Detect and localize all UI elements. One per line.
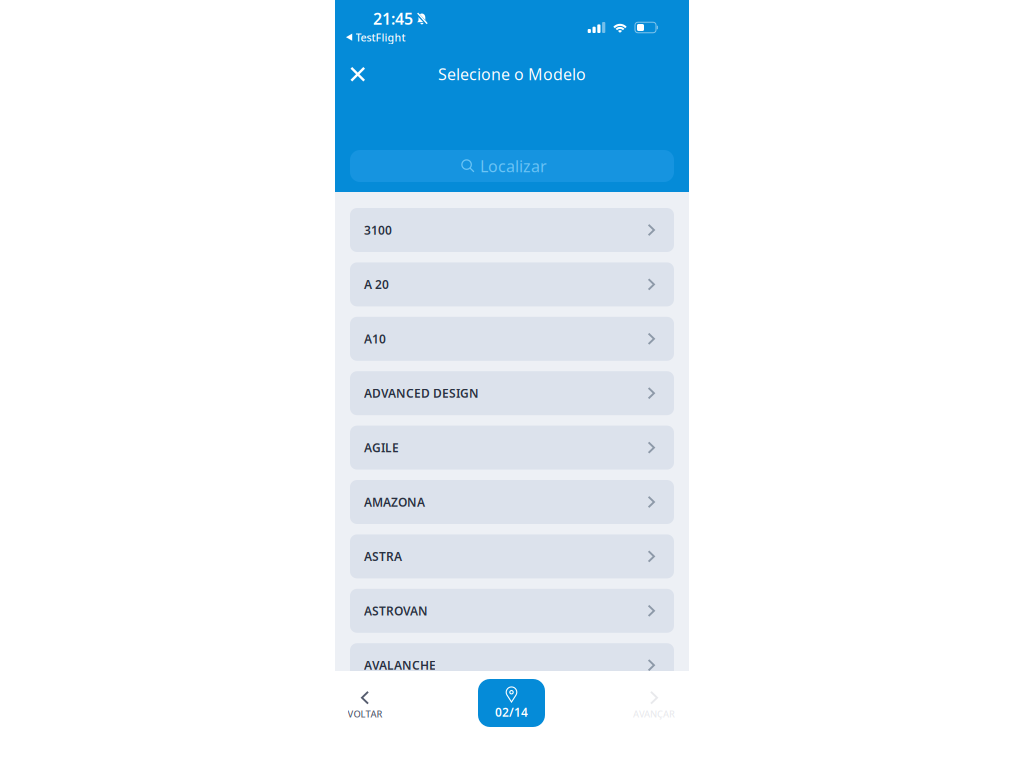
staticText: ASTROVAN [364,603,428,619]
button[interactable]: AVANÇAR [619,680,689,726]
button[interactable]: ASTRA [350,534,674,578]
staticText: VOLTAR [347,708,382,720]
button[interactable]: AMAZONA [350,480,674,524]
button[interactable]: 3100 [350,208,674,252]
button[interactable]: 02/14 [478,679,545,727]
staticText: TestFlight [355,30,405,44]
staticText: AGILE [364,440,399,455]
staticText: AVANÇAR [633,708,675,720]
staticText: 3100 [364,222,392,238]
button[interactable]: ASTROVAN [350,589,674,633]
button[interactable]: A10 [350,317,674,361]
button[interactable]: AVEO [350,698,674,742]
staticText: ADVANCED DESIGN [364,385,479,401]
button[interactable]: ADVANCED DESIGN [350,371,674,415]
button[interactable]: VOLTAR [335,680,395,726]
button[interactable]: Localizar [350,150,674,182]
button[interactable]: AGILE [350,426,674,470]
staticText: 21:45 [373,8,413,29]
staticText: AVEO [364,712,396,727]
staticText: A10 [364,331,386,347]
staticText: A 20 [364,276,389,292]
staticText: ASTRA [364,548,402,564]
button[interactable]: AVALANCHE [350,643,674,687]
staticText: Localizar [480,155,547,177]
button[interactable]: A 20 [350,262,674,306]
staticText: AVALANCHE [364,657,436,673]
staticText: Selecione o Modelo [438,63,586,85]
staticText: AMAZONA [364,494,425,510]
button[interactable]: Fechar [335,59,381,89]
staticText: 02/14 [495,704,528,720]
